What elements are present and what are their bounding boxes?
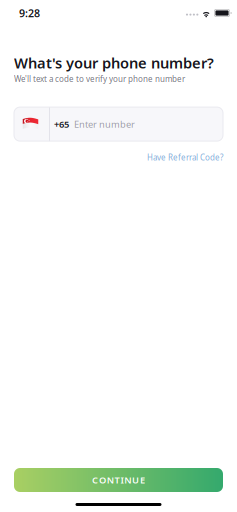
staticText: We'll text a code to verify your phone n… (14, 73, 185, 84)
staticText: CONTINUE (92, 474, 145, 486)
staticText: +65 (54, 118, 69, 130)
staticText: Enter number (74, 118, 135, 130)
button[interactable]: CONTINUE (14, 468, 223, 492)
staticText: What's your phone number? (14, 53, 214, 72)
staticText: 9:28 (19, 6, 40, 20)
staticText: Have Referral Code? (147, 152, 223, 163)
button[interactable]: Have Referral Code? (145, 148, 225, 167)
